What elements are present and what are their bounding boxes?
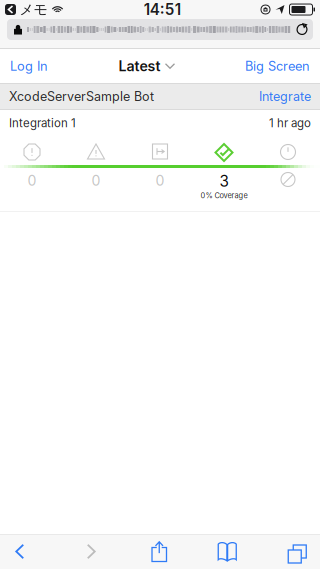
button[interactable]: Big Screen bbox=[236, 49, 319, 83]
staticText: 0 bbox=[155, 172, 164, 189]
staticText: 0 bbox=[91, 172, 100, 189]
staticText: 0 bbox=[27, 172, 36, 189]
staticText: Log In bbox=[10, 58, 48, 74]
staticText: Big Screen bbox=[245, 58, 310, 74]
button[interactable]: Bookmarks bbox=[118, 534, 158, 569]
staticText: メモ bbox=[19, 1, 47, 18]
button[interactable]: Back bbox=[0, 534, 39, 569]
staticText: Latest bbox=[118, 57, 160, 74]
button[interactable]: Tabs bbox=[158, 534, 197, 569]
button[interactable]: Latest bbox=[118, 49, 174, 83]
button[interactable]: Log In bbox=[1, 49, 57, 83]
staticText: XcodeServerSample Bot bbox=[9, 89, 154, 104]
staticText: 14:51 bbox=[144, 0, 181, 19]
staticText: 3 bbox=[219, 172, 228, 190]
button[interactable]: Integrate bbox=[259, 89, 311, 104]
button[interactable]: Share bbox=[79, 534, 118, 569]
staticText: 1 hr ago bbox=[269, 116, 311, 130]
button[interactable]: Reload bbox=[291, 19, 313, 40]
staticText: Integrate bbox=[259, 89, 311, 104]
staticText: 0% Coverage bbox=[200, 191, 247, 200]
staticText: Integration 1 bbox=[9, 116, 76, 130]
